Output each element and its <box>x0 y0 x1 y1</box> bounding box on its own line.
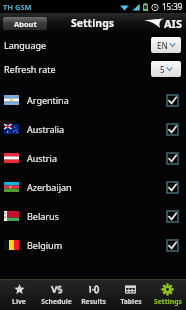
button[interactable]: Austria <box>0 143 186 172</box>
staticText: Settings <box>154 297 182 306</box>
button[interactable]: Toggle Argentina <box>162 90 182 110</box>
button[interactable]: EN <box>151 37 181 53</box>
button[interactable]: Live <box>0 280 38 310</box>
button[interactable]: Refresh rate <box>0 57 186 81</box>
button[interactable]: Belarus <box>0 201 186 230</box>
staticText: Austria <box>27 152 57 164</box>
button[interactable]: Toggle Azerbaijan <box>162 177 182 197</box>
button[interactable]: Toggle Austria <box>162 148 182 168</box>
staticText: AIS <box>164 16 182 31</box>
staticText: Belgium <box>27 239 63 251</box>
button[interactable]: 5 <box>151 61 181 77</box>
staticText: Live <box>12 297 26 306</box>
staticText: About <box>14 19 37 29</box>
staticText: Language <box>4 39 47 51</box>
button[interactable]: Tables <box>112 280 149 310</box>
staticText: Tables <box>120 297 142 306</box>
staticText: Refresh rate <box>4 63 56 75</box>
button[interactable]: Schedule <box>38 280 75 310</box>
button[interactable]: Toggle Belgium <box>162 235 182 255</box>
button[interactable]: Toggle Belarus <box>162 206 182 226</box>
button[interactable]: Australia <box>0 114 186 143</box>
button[interactable]: Argentina <box>0 85 186 114</box>
button[interactable]: Language <box>0 33 186 57</box>
button[interactable]: Azerbaijan <box>0 172 186 201</box>
staticText: Results <box>81 297 106 306</box>
button[interactable]: Settings <box>149 280 186 310</box>
staticText: Settings <box>71 16 115 30</box>
staticText: Schedule <box>41 297 72 306</box>
staticText: Belarus <box>27 210 59 222</box>
staticText: Australia <box>27 123 65 135</box>
button[interactable]: About <box>3 17 47 30</box>
staticText: 5 <box>160 64 165 75</box>
staticText: 15:39 <box>162 1 183 12</box>
staticText: Argentina <box>27 94 69 106</box>
button[interactable]: Belgium <box>0 230 186 259</box>
button[interactable]: Toggle Australia <box>162 119 182 139</box>
staticText: Azerbaijan <box>27 181 72 193</box>
staticText: TH GSM <box>3 2 32 12</box>
button[interactable]: Results <box>75 280 112 310</box>
staticText: EN <box>157 40 168 51</box>
